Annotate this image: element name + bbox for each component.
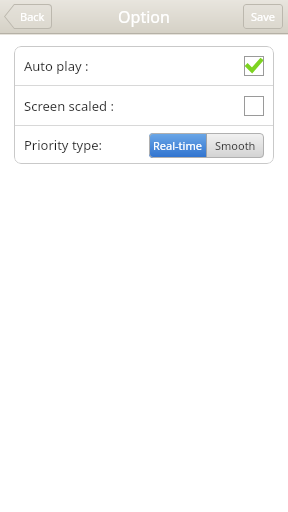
button[interactable]: Back [4,4,52,29]
button[interactable]: Auto play : [14,46,274,85]
staticText: Back [20,9,45,24]
button[interactable]: Screen scaled [244,96,264,116]
staticText: Smooth [215,138,256,153]
staticText: Priority type: [24,136,149,154]
staticText: Option [118,6,170,28]
button[interactable]: Real-time [149,133,206,158]
staticText: Screen scaled : [24,97,244,115]
button[interactable]: Save [243,4,283,29]
staticText: Real-time [153,138,202,153]
button[interactable]: Priority type: [14,126,274,164]
button[interactable]: Smooth [207,133,264,158]
button[interactable]: Screen scaled : [14,86,274,125]
button[interactable]: Auto play [244,56,264,76]
staticText: Save [251,9,276,24]
staticText: Auto play : [24,57,244,75]
